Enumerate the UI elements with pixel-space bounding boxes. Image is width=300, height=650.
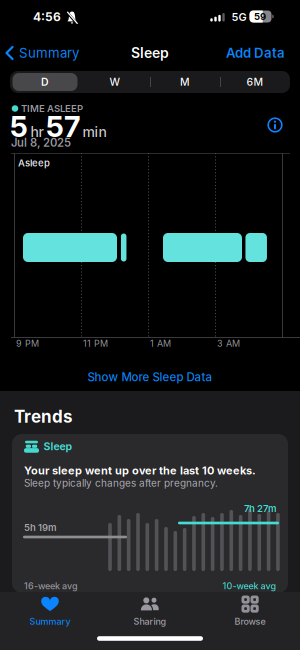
staticText: Jul 8, 2025 <box>11 136 71 150</box>
staticText: Sleep typically changes after pregnancy. <box>24 477 218 489</box>
button[interactable]: Summary <box>5 39 105 67</box>
staticText: Asleep <box>18 157 50 169</box>
staticText: D <box>41 76 49 88</box>
staticText: 9 PM <box>16 338 39 349</box>
staticText: 16-week avg <box>24 581 78 591</box>
staticText: Sharing <box>133 616 166 627</box>
staticText: 4:56 <box>33 10 61 24</box>
staticText: Sleep <box>131 44 169 61</box>
staticText: 3 AM <box>217 338 240 349</box>
staticText: Browse <box>234 616 265 627</box>
staticText: 1 AM <box>150 338 171 349</box>
staticText: min <box>82 123 106 140</box>
staticText: 59 <box>254 11 266 22</box>
button[interactable]: W <box>82 71 148 93</box>
staticText: 11 PM <box>83 338 108 349</box>
staticText: 6M <box>246 76 263 88</box>
staticText: TIME ASLEEP <box>21 103 83 114</box>
button[interactable]: D <box>12 71 78 93</box>
staticText: 5G <box>231 10 246 24</box>
staticText: hr <box>30 123 43 140</box>
button[interactable]: Sharing <box>105 591 195 633</box>
staticText: 5h 19m <box>24 522 57 533</box>
staticText: 5 <box>10 109 28 144</box>
staticText: Add Data <box>226 45 285 61</box>
staticText: Trends <box>14 406 73 427</box>
button[interactable]: 6M <box>222 71 288 93</box>
staticText: 57 <box>46 109 80 144</box>
staticText: Summary <box>29 616 70 627</box>
button[interactable]: M <box>152 71 218 93</box>
staticText: M <box>180 76 190 88</box>
staticText: Summary <box>19 45 79 61</box>
staticText: 10-week avg <box>222 581 276 591</box>
button[interactable]: Show More Sleep Data <box>60 365 240 389</box>
staticText: Show More Sleep Data <box>87 370 212 384</box>
staticText: W <box>109 76 120 88</box>
staticText: Your sleep went up over the last 10 week… <box>24 464 256 477</box>
button[interactable]: Summary <box>5 591 95 633</box>
button[interactable] <box>12 434 288 593</box>
button[interactable]: Add Data <box>205 39 285 67</box>
button[interactable]: Browse <box>205 591 295 633</box>
staticText: Sleep <box>43 440 72 453</box>
button[interactable] <box>265 115 285 135</box>
staticText: 7h 27m <box>244 503 277 514</box>
